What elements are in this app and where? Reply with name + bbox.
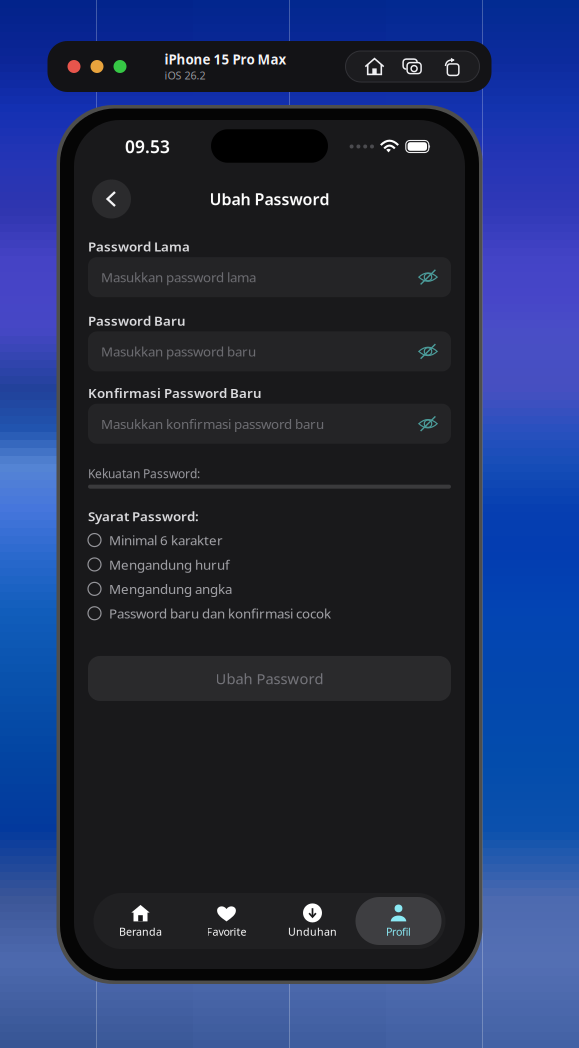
button[interactable]: Screenshot [402,57,422,76]
staticText: Profil [386,924,411,939]
staticText: Favorite [206,924,246,939]
staticText: Password Baru [88,312,186,329]
staticText: Mengandung angka [109,580,232,598]
staticText: Ubah Password [215,669,323,688]
staticText: Masukkan konfirmasi password baru [101,415,324,433]
staticText: Konfirmasi Password Baru [88,384,262,402]
staticText: iOS 26.2 [164,68,205,82]
staticText: Syarat Password: [88,507,199,525]
staticText: Kekuatan Password: [88,466,200,482]
button[interactable]: Favorite [183,897,269,945]
button[interactable]: Masukkan password baru [88,331,451,371]
button[interactable]: Profil [355,897,441,945]
staticText: Password Lama [88,237,190,255]
button[interactable]: Masukkan password lama [88,257,451,297]
staticText: Masukkan password baru [101,343,256,360]
button[interactable]: Back [92,179,131,218]
button[interactable]: Ubah Password [88,656,451,701]
staticText: Minimal 6 karakter [109,531,223,549]
staticText: Mengandung huruf [109,556,230,573]
button[interactable]: Unduhan [269,897,355,945]
staticText: iPhone 15 Pro Max [164,51,286,68]
button[interactable]: Home [364,57,384,76]
staticText: Masukkan password lama [101,268,256,286]
button[interactable]: Masukkan konfirmasi password baru [88,404,451,444]
button[interactable]: Rotate [440,57,460,76]
staticText: Beranda [119,924,162,939]
staticText: Password baru dan konfirmasi cocok [109,604,331,622]
staticText: Ubah Password [209,188,329,210]
staticText: Unduhan [288,924,337,939]
staticText: 09.53 [125,135,170,158]
button[interactable]: Beranda [97,897,183,945]
